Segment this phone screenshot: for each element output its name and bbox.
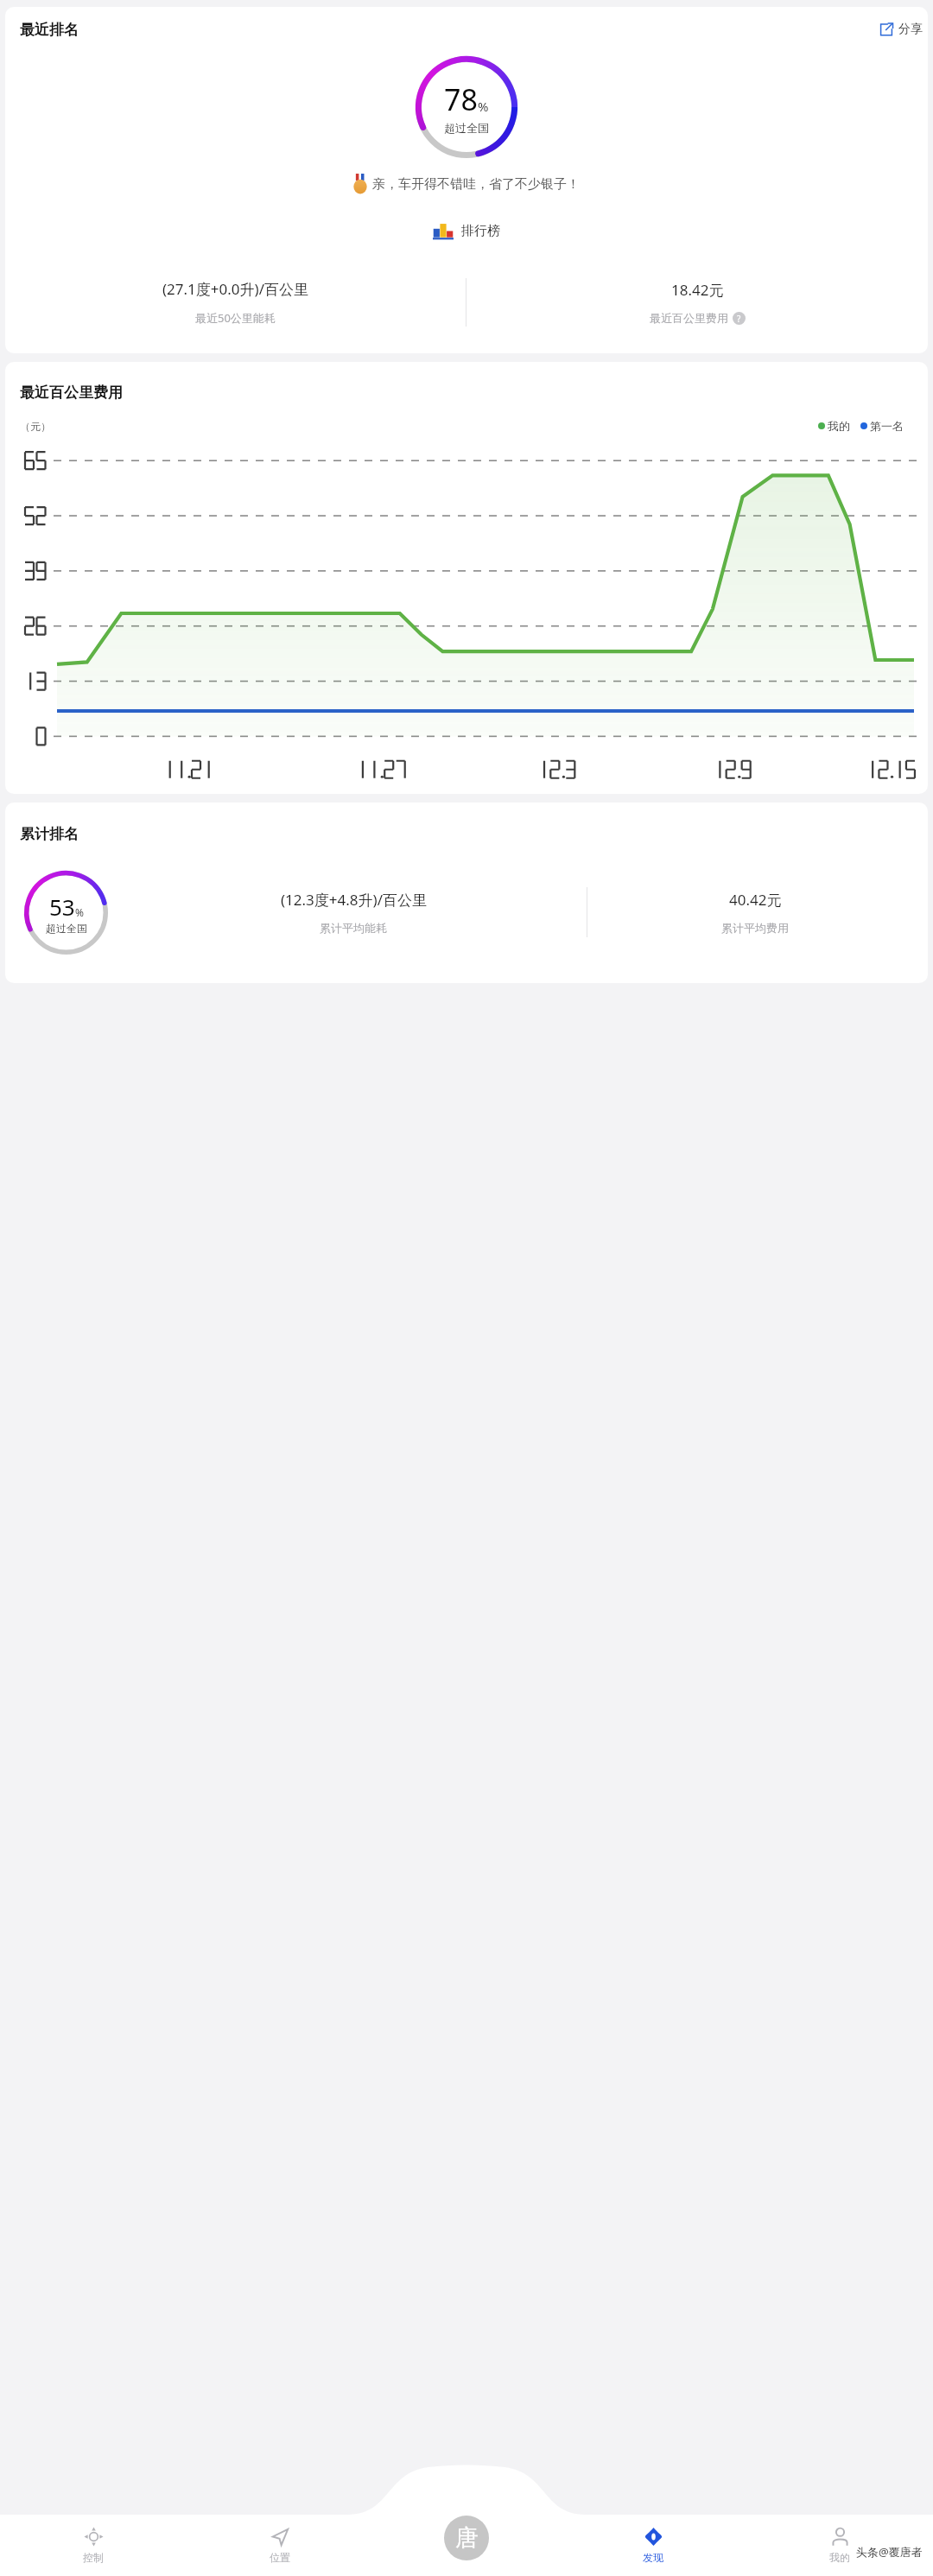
staticText: 发现 — [643, 2551, 663, 2564]
button[interactable]: 唐 — [444, 2516, 489, 2560]
staticText: 我的 — [828, 419, 850, 433]
staticText: 最近排名 — [20, 21, 79, 39]
staticText: 头条@覆唐者 — [856, 2544, 923, 2560]
button[interactable]: 控制 — [0, 2515, 187, 2576]
staticText: 累计平均能耗 — [320, 921, 387, 935]
staticText: % — [75, 905, 84, 919]
staticText: 最近百公里费用 — [650, 311, 728, 325]
staticText: 最近百公里费用 — [20, 384, 123, 402]
button[interactable]: 我的 — [746, 2515, 933, 2576]
staticText: 亲，车开得不错哇，省了不少银子！ — [372, 176, 580, 193]
staticText: 累计平均费用 — [721, 921, 789, 935]
staticText: 超过全国 — [444, 121, 489, 135]
staticText: 超过全国 — [46, 922, 87, 935]
staticText: 累计排名 — [20, 825, 79, 843]
staticText: 排行榜 — [461, 223, 500, 239]
staticText: 40.42元 — [729, 890, 782, 910]
button[interactable]: 排行榜 — [410, 212, 523, 250]
staticText: (27.1度+0.0升)/百公里 — [162, 279, 308, 299]
button[interactable]: 发现 — [560, 2515, 746, 2576]
staticText: 我的 — [829, 2551, 850, 2564]
staticText: ? — [737, 313, 741, 325]
staticText: （元） — [20, 420, 51, 433]
staticText: 78 — [444, 79, 478, 119]
staticText: 53 — [49, 891, 75, 922]
staticText: 分享 — [898, 22, 923, 37]
button[interactable]: 帮助 — [733, 312, 746, 325]
staticText: (12.3度+4.8升)/百公里 — [281, 890, 427, 910]
staticText: 18.42元 — [671, 280, 724, 300]
staticText: 位置 — [270, 2551, 290, 2564]
staticText: 控制 — [83, 2551, 104, 2564]
staticText: % — [478, 98, 489, 115]
staticText: 最近50公里能耗 — [195, 310, 276, 326]
staticText: 第一名 — [870, 419, 904, 433]
button[interactable]: 位置 — [187, 2515, 373, 2576]
staticText: 唐 — [455, 2523, 479, 2553]
button[interactable]: 分享 — [867, 15, 928, 44]
